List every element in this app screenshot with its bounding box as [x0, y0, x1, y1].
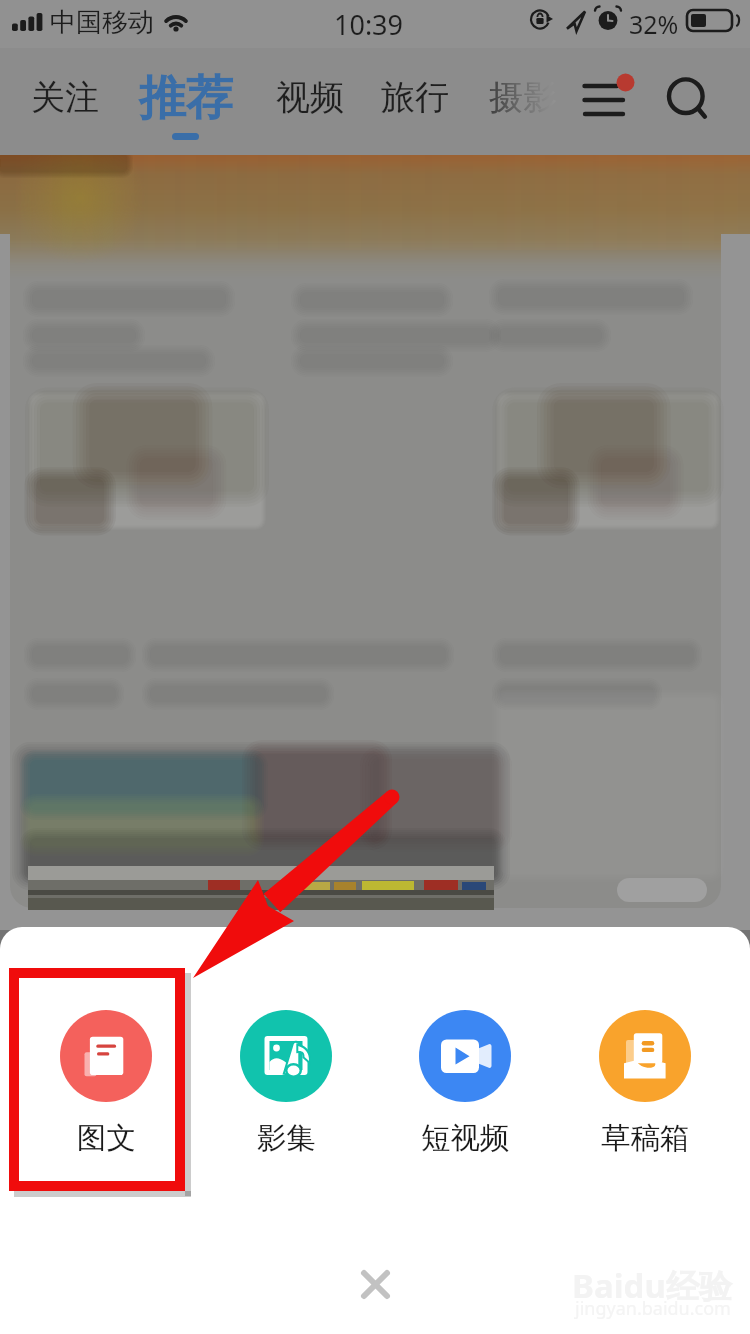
button[interactable]: 短视频 [399, 1010, 531, 1157]
staticText: jingyan.baidu.com [575, 1296, 731, 1321]
staticText: 10:39 [334, 6, 404, 43]
button[interactable]: 摄影 [475, 48, 543, 155]
staticText: 32% [629, 7, 679, 41]
button[interactable]: 关注 [17, 48, 85, 155]
button[interactable]: 视频 [262, 48, 330, 155]
staticText: 影集 [257, 1120, 316, 1157]
button[interactable]: 草稿箱 [579, 1010, 711, 1157]
button[interactable]: 推荐 [125, 48, 219, 155]
button[interactable]: 图文 [40, 1010, 172, 1157]
button[interactable]: Close [347, 1257, 403, 1313]
staticText: 中国移动 [50, 6, 154, 39]
button[interactable]: Menu [576, 70, 638, 132]
staticText: 推荐 [139, 69, 233, 128]
staticText: Baidu经验 [572, 1263, 732, 1308]
button[interactable]: 旅行 [367, 48, 435, 155]
staticText: 图文 [77, 1120, 136, 1157]
staticText: 旅行 [381, 76, 449, 119]
staticText: 草稿箱 [601, 1120, 690, 1157]
button[interactable]: 影集 [220, 1010, 352, 1157]
staticText: 关注 [31, 76, 99, 119]
staticText: 摄影 [489, 76, 557, 119]
button[interactable]: Search [660, 68, 718, 126]
staticText: 视频 [276, 76, 344, 119]
staticText: 短视频 [421, 1120, 510, 1157]
